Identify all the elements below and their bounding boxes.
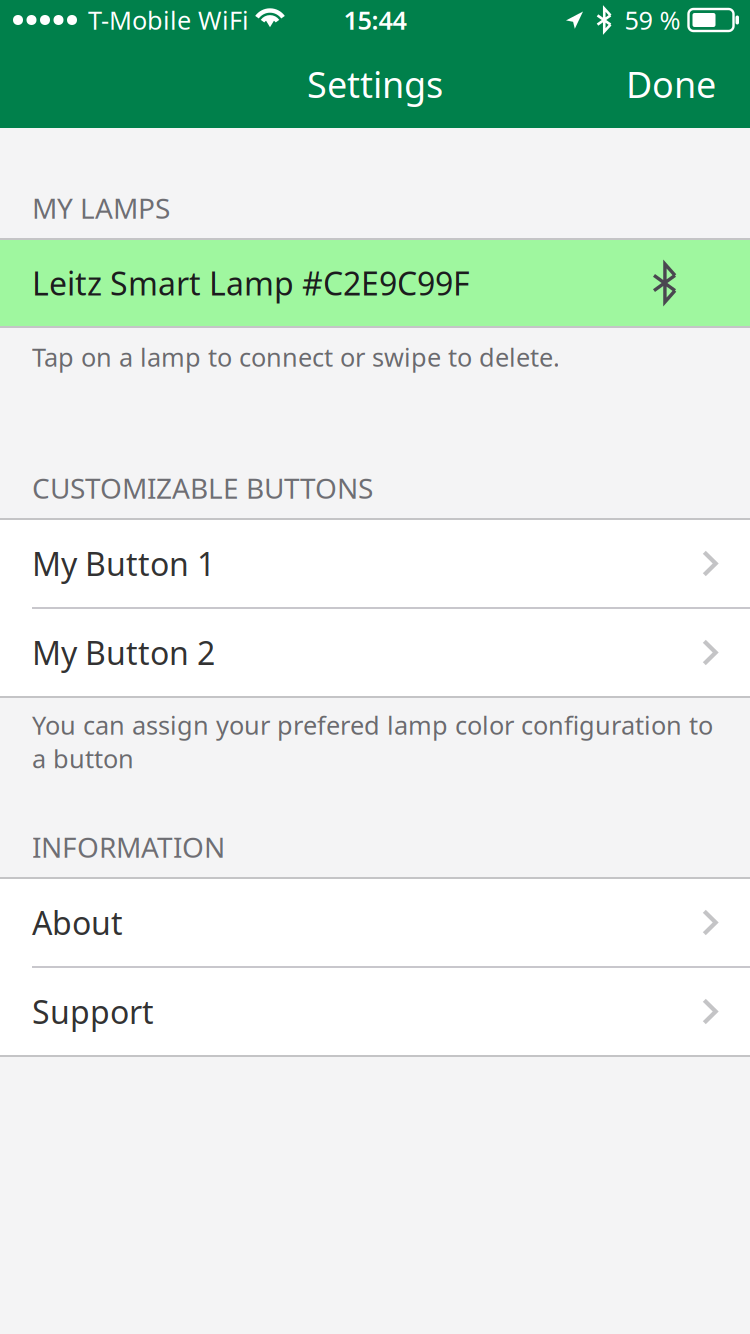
button[interactable]: My Button 1 (0, 520, 750, 607)
staticText: Settings (307, 60, 443, 108)
staticText: My Button 2 (32, 631, 215, 674)
staticText: 15:44 (343, 3, 406, 37)
staticText: My Button 1 (32, 542, 215, 585)
staticText: Done (626, 60, 716, 108)
staticText: T-Mobile WiFi (88, 3, 249, 37)
staticText: About (32, 901, 123, 944)
button[interactable]: Done (606, 44, 750, 124)
button[interactable]: About (0, 879, 750, 966)
button[interactable]: Support (0, 968, 750, 1055)
staticText: Leitz Smart Lamp #C2E9C99F (32, 262, 470, 304)
staticText: You can assign your prefered lamp color … (32, 708, 713, 775)
button[interactable]: My Button 2 (0, 609, 750, 696)
staticText: 59 % (624, 3, 680, 37)
staticText: MY LAMPS (32, 189, 170, 227)
button[interactable]: Leitz Smart Lamp #C2E9C99F (0, 240, 750, 326)
staticText: Support (32, 990, 154, 1033)
staticText: CUSTOMIZABLE BUTTONS (32, 469, 373, 507)
staticText: INFORMATION (32, 828, 225, 866)
staticText: Tap on a lamp to connect or swipe to del… (32, 340, 560, 374)
